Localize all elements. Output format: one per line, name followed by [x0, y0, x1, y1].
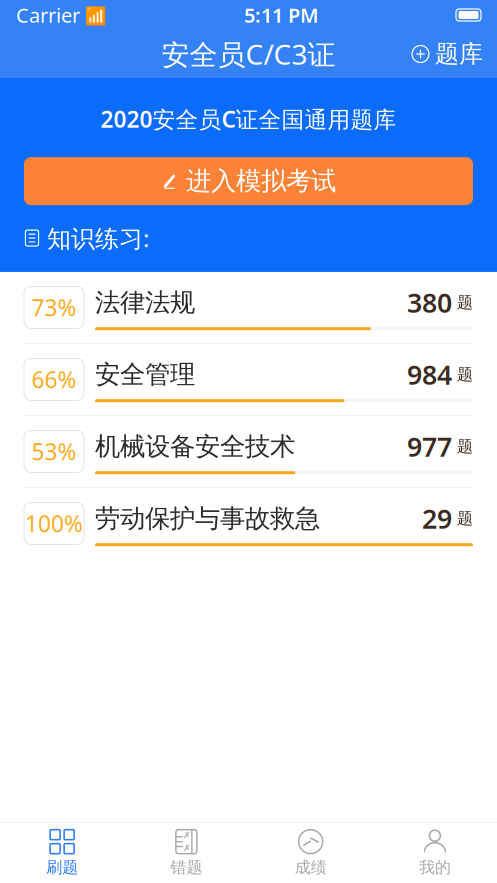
staticText: 2020安全员C证全国通用题库 [100, 104, 396, 134]
staticText: 100% [25, 508, 83, 538]
staticText: 进入模拟考试 [186, 165, 336, 197]
staticText: 刷题 [46, 858, 78, 877]
button[interactable]: 53% [0, 416, 497, 488]
staticText: 984 [407, 357, 452, 392]
button[interactable]: 进入模拟考试 [24, 157, 473, 205]
staticText: 题 [452, 365, 473, 384]
button[interactable]: 成绩 [248, 824, 373, 882]
staticText: ✗ [183, 830, 191, 841]
staticText: 法律法规 [95, 287, 195, 318]
button[interactable]: ✗ [124, 824, 248, 882]
staticText: 我的 [419, 858, 451, 877]
staticText: 5:11 PM [244, 2, 319, 28]
button[interactable]: 题库 [402, 33, 497, 75]
staticText: 安全管理 [95, 359, 195, 390]
staticText: 380 [407, 285, 452, 320]
staticText: 机械设备安全技术 [95, 431, 295, 462]
staticText: 题 [452, 509, 473, 528]
staticText: 安全员C/C3证 [161, 35, 335, 73]
button[interactable]: 66% [0, 344, 497, 416]
staticText: 成绩 [295, 858, 327, 877]
staticText: 66% [31, 364, 76, 394]
button[interactable]: 刷题 [0, 824, 124, 882]
staticText: 知识练习: [47, 222, 149, 254]
staticText: 题库 [435, 39, 483, 69]
button[interactable]: 100% [0, 488, 497, 560]
staticText: 73% [31, 292, 76, 322]
staticText: 题 [452, 293, 473, 312]
staticText: 53% [31, 436, 76, 466]
staticText: 29 [422, 501, 452, 536]
button[interactable]: 我的 [373, 824, 497, 882]
button[interactable]: 73% [0, 272, 497, 344]
staticText: 📶 [80, 3, 107, 26]
staticText: Carrier [16, 2, 80, 28]
staticText: ✗ [183, 843, 191, 853]
staticText: 977 [407, 429, 452, 464]
staticText: 题 [452, 437, 473, 456]
staticText: 劳动保护与事故救急 [95, 503, 320, 534]
staticText: 错题 [170, 858, 202, 877]
